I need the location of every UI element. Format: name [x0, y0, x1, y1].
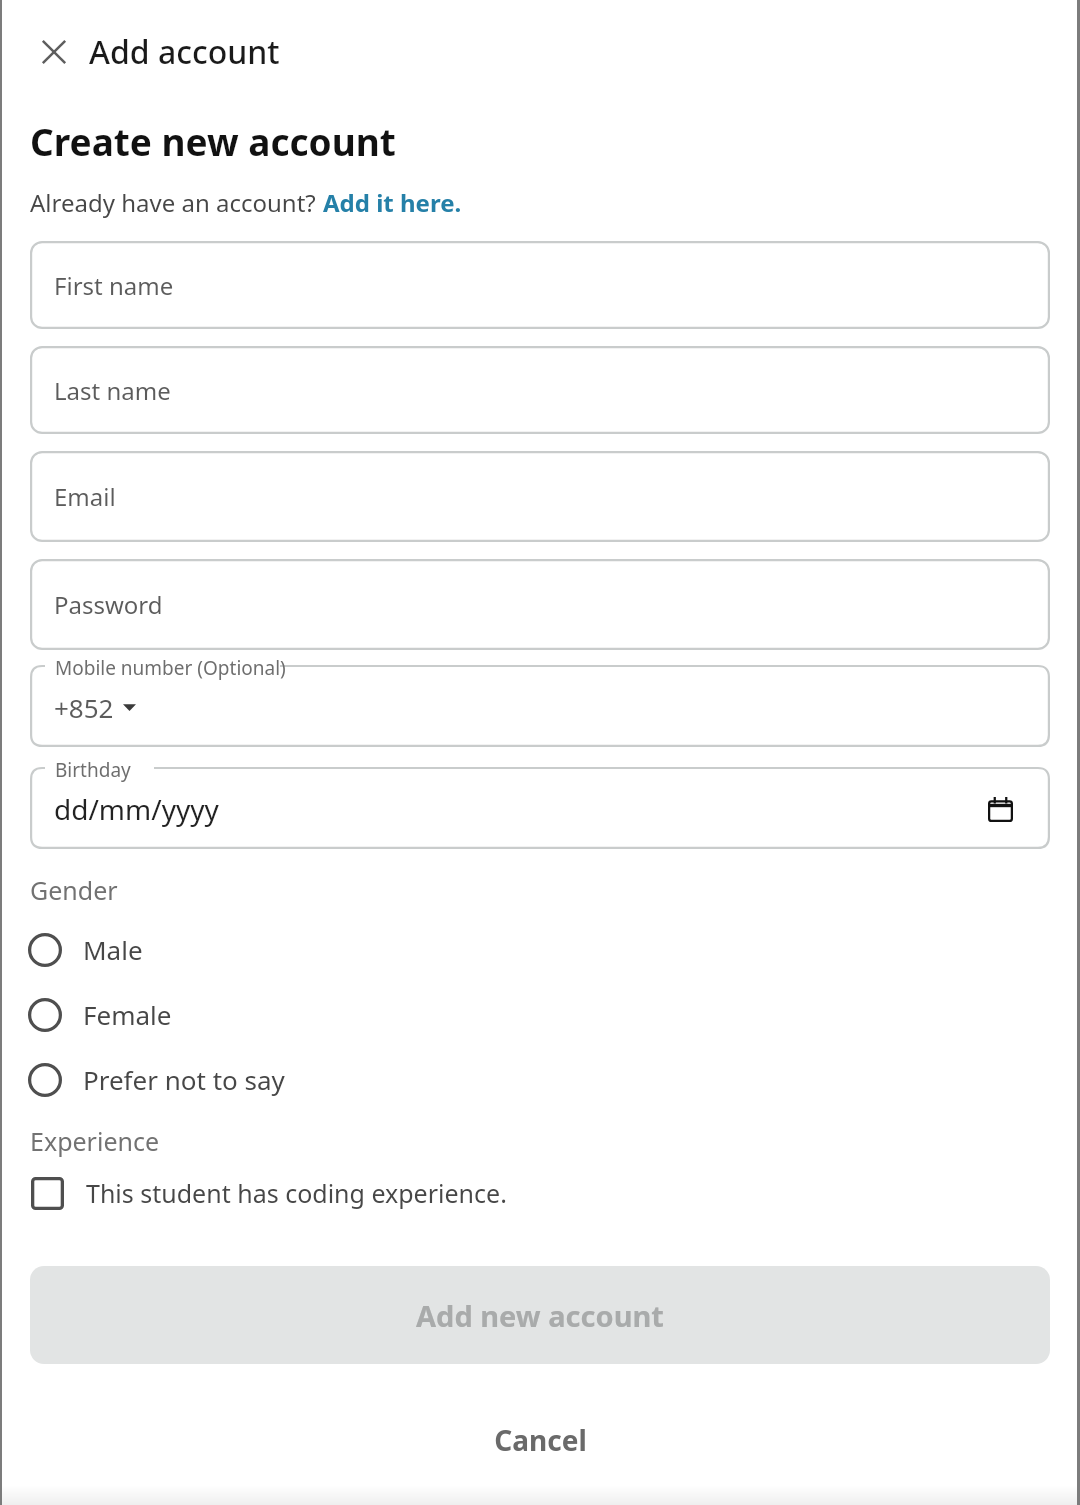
button[interactable]: Close	[31, 29, 77, 75]
button[interactable]: Birthday	[30, 757, 1050, 849]
staticText: Mobile number (Optional)	[55, 655, 286, 681]
button[interactable]: Email	[30, 451, 1050, 542]
staticText: Gender	[30, 873, 118, 907]
staticText: Cancel	[494, 1421, 587, 1459]
button[interactable]: Password	[30, 559, 1050, 650]
staticText: Birthday	[55, 757, 131, 783]
staticText: Password	[54, 588, 163, 621]
staticText: Add it here.	[323, 186, 462, 219]
staticText: Last name	[54, 374, 171, 407]
button[interactable]: Pick date	[978, 787, 1022, 831]
button[interactable]: Male	[0, 917, 1080, 982]
staticText: +852	[54, 690, 114, 725]
staticText: Experience	[30, 1124, 160, 1158]
button[interactable]: Mobile number (Optional)	[30, 655, 1050, 747]
staticText: First name	[54, 269, 174, 302]
staticText: Add new account	[416, 1296, 664, 1335]
button[interactable]: Add it here.	[323, 186, 462, 219]
button[interactable]: Last name	[30, 346, 1050, 434]
button[interactable]: Prefer not to say	[0, 1047, 1080, 1112]
staticText: dd/mm/yyyy	[54, 790, 219, 828]
staticText: Email	[54, 480, 116, 513]
button[interactable]: Add new account	[30, 1266, 1050, 1364]
staticText: Already have an account?	[30, 186, 323, 219]
button[interactable]: Female	[0, 982, 1080, 1047]
staticText: Add account	[89, 30, 280, 74]
staticText: This student has coding experience.	[86, 1176, 507, 1210]
staticText: Female	[83, 997, 172, 1032]
button[interactable]: This student has coding experience.	[0, 1166, 1080, 1220]
button[interactable]: First name	[30, 241, 1050, 329]
staticText: Create new account	[30, 116, 396, 166]
staticText: Prefer not to say	[83, 1062, 285, 1097]
staticText: Male	[83, 932, 143, 967]
button[interactable]: Cancel	[0, 1410, 1080, 1470]
